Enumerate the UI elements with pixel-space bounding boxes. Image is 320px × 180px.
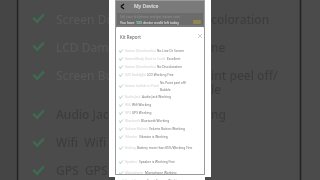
button[interactable]: Audio Jack — [119, 93, 197, 101]
button[interactable]: Vibrator — [119, 133, 197, 141]
button[interactable]: Front Camera — [119, 177, 197, 180]
staticText: Screen bubble or Paint — [125, 84, 159, 88]
staticText: Volume Button Working — [149, 127, 197, 131]
staticText: int peel off/ — [211, 67, 278, 83]
button[interactable]: Bluetooth — [119, 117, 197, 125]
staticText: LCD Backlight — [125, 73, 146, 77]
staticText: Screen/Body Dent or Crack — [125, 57, 166, 61]
button[interactable]: Back — [119, 3, 126, 10]
staticText: No Discoloration — [157, 65, 197, 69]
staticText: ng — [211, 106, 226, 122]
staticText: Screen Dis — [56, 11, 116, 27]
staticText: No Paint peel off/ Bubble — [160, 81, 197, 92]
staticText: Bluetooth Working — [141, 119, 197, 123]
staticText: Sell your old phone and get instant cash — [120, 15, 180, 19]
staticText: Audio Jack — [125, 95, 141, 99]
button[interactable]: Screen/Body Dent or Crack — [119, 55, 197, 63]
staticText: Vibrator — [125, 135, 138, 139]
staticText: Audio Jack — [56, 106, 116, 122]
staticText: le — [211, 81, 222, 97]
staticText: Excellent — [167, 57, 197, 61]
button[interactable]: Close — [195, 31, 204, 40]
staticText: ne — [211, 39, 226, 55]
staticText: 123 — [136, 20, 143, 25]
button[interactable]: Battery — [119, 141, 197, 155]
button[interactable]: Speaker — [119, 155, 197, 169]
staticText: Speaker is Working Fine — [139, 160, 197, 164]
button[interactable]: LCD Backlight — [119, 71, 197, 79]
staticText: Screen Discoloration — [125, 49, 156, 53]
button[interactable]: Screen Discoloration — [119, 47, 197, 55]
staticText: Vibrator is Working — [139, 135, 197, 139]
staticText: GPS Working — [132, 111, 197, 115]
button[interactable]: Screen Discoloration — [119, 63, 197, 71]
staticText: Front Camera — [125, 179, 146, 180]
staticText: Screen Bu — [56, 67, 114, 83]
staticText: Wifi Wifi W — [56, 134, 121, 150]
staticText: LCD Working Fine — [147, 73, 197, 77]
button[interactable]: Volume Button — [119, 125, 197, 133]
staticText: Screen Discoloration — [125, 65, 156, 69]
staticText: Kit Report — [120, 34, 142, 40]
staticText: GPS — [125, 111, 131, 115]
staticText: Microphone Working — [145, 171, 197, 175]
staticText: Volume Button — [125, 127, 148, 131]
button[interactable]: GPS — [119, 109, 197, 117]
staticText: Wifi — [125, 103, 131, 107]
button[interactable]: Wifi — [119, 101, 197, 109]
staticText: Wifi Working — [132, 103, 197, 107]
staticText: Bluetooth — [125, 119, 140, 123]
staticText: Microphone — [125, 171, 144, 175]
staticText: GPS GPS W — [56, 162, 122, 178]
staticText: Battery more than 85%/Working Fine — [137, 146, 197, 150]
staticText: device credit left today — [143, 20, 179, 25]
staticText: My Device — [134, 3, 159, 10]
button[interactable]: Microphone — [119, 169, 197, 177]
button[interactable]: Screen bubble or Paint — [119, 79, 197, 93]
staticText: Audio Jack Working — [142, 95, 197, 99]
button[interactable]: Sell now — [193, 20, 201, 24]
staticText: Front Camera Working — [147, 179, 197, 180]
staticText: Speaker — [125, 160, 138, 164]
staticText: No Line Or Screen — [157, 49, 197, 53]
staticText: You have — [120, 20, 136, 25]
staticText: coloration — [211, 11, 270, 27]
staticText: LCD Dama — [56, 39, 116, 55]
staticText: Battery — [125, 146, 136, 150]
